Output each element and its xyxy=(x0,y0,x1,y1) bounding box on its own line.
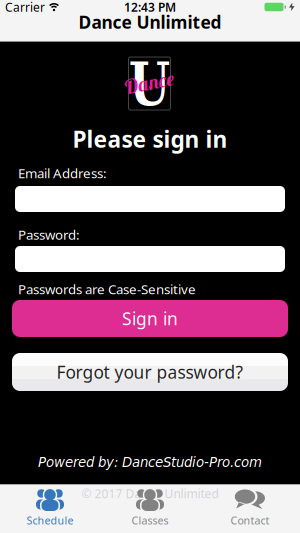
staticText: Passwords are Case-Sensitive xyxy=(18,280,196,298)
staticText: Carrier xyxy=(5,0,45,15)
staticText: Please sign in xyxy=(72,124,227,154)
staticText: Powered by: DanceStudio-Pro.com xyxy=(38,455,262,470)
button[interactable]: Schedule xyxy=(0,488,100,527)
staticText: © 2017 Dance Unlimited xyxy=(81,485,218,501)
staticText: Schedule xyxy=(26,513,73,527)
staticText: Dance xyxy=(123,70,174,95)
staticText: Password: xyxy=(18,226,80,243)
button[interactable]: Sign in xyxy=(12,300,288,337)
button[interactable]: Classes xyxy=(100,488,200,527)
staticText: Forgot your password? xyxy=(56,360,243,383)
staticText: U xyxy=(126,49,173,119)
button[interactable]: Password xyxy=(15,246,285,272)
staticText: Contact xyxy=(230,513,269,527)
staticText: Dance Unlimited xyxy=(78,10,221,33)
staticText: Sign in xyxy=(122,307,178,330)
staticText: 12:43 PM xyxy=(124,0,176,15)
button[interactable]: Powered by: DanceStudio-Pro.com xyxy=(38,455,262,470)
button[interactable]: Contact xyxy=(200,488,300,527)
button[interactable]: Email Address xyxy=(15,186,285,212)
button[interactable]: Forgot your password? xyxy=(12,353,288,391)
staticText: Classes xyxy=(131,513,168,527)
staticText: Email Address: xyxy=(18,164,107,182)
